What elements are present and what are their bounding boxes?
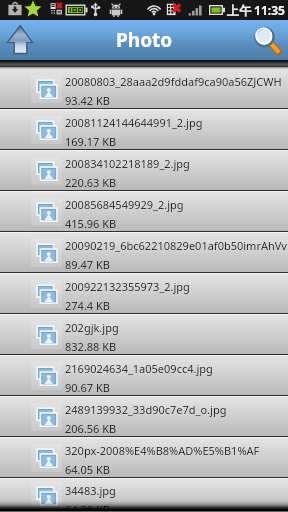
staticText: 20081124144644991_2.jpg <box>65 115 203 130</box>
button[interactable]: 20080803_28aaa2d9fddaf9ca90a56ZJCWH <box>0 69 288 108</box>
button[interactable]: 200922132355973_2.jpg <box>0 274 288 313</box>
staticText: 20080803_28aaa2d9fddaf9ca90a56ZJCWH <box>65 74 282 89</box>
staticText: 20090219_6bc62210829e01af0b50imrAhVv <box>65 238 287 253</box>
staticText: 206.56 KB <box>65 421 117 436</box>
staticText: 89.47 KB <box>65 257 110 272</box>
button[interactable]: 320px-2008%E4%B8%AD%E5%B1%AF <box>0 438 288 477</box>
staticText: Photo <box>116 27 173 53</box>
staticText: 274.4 KB <box>65 298 110 313</box>
staticText: 2169024634_1a05e09cc4.jpg <box>65 361 213 376</box>
button[interactable]: 20090219_6bc62210829e01af0b50imrAhVv <box>0 233 288 272</box>
button[interactable]: 20081124144644991_2.jpg <box>0 110 288 149</box>
staticText: 90.67 KB <box>65 380 110 395</box>
staticText: 202gjk.jpg <box>65 320 119 335</box>
staticText: 2489139932_33d90c7e7d_o.jpg <box>65 402 227 417</box>
button[interactable]: 34483.jpg <box>0 479 288 512</box>
staticText: 220.63 KB <box>65 175 117 190</box>
staticText: 34483.jpg <box>65 483 116 498</box>
button[interactable]: 20085684549929_2.jpg <box>0 192 288 231</box>
staticText: 320px-2008%E4%B8%AD%E5%B1%AF <box>65 443 260 458</box>
button[interactable]: Up one level <box>0 20 44 60</box>
staticText: 832.88 KB <box>65 339 117 354</box>
staticText: 200922132355973_2.jpg <box>65 279 190 294</box>
staticText: 93.42 KB <box>65 93 110 108</box>
button[interactable]: 202gjk.jpg <box>0 315 288 354</box>
button[interactable]: 2489139932_33d90c7e7d_o.jpg <box>0 397 288 436</box>
staticText: 20085684549929_2.jpg <box>65 197 184 212</box>
button[interactable]: 200834102218189_2.jpg <box>0 151 288 190</box>
staticText: 64.28 KB <box>65 502 110 512</box>
staticText: 169.17 KB <box>65 134 117 149</box>
staticText: 64.05 KB <box>65 462 110 477</box>
staticText: 415.96 KB <box>65 216 117 231</box>
button[interactable]: 2169024634_1a05e09cc4.jpg <box>0 356 288 395</box>
button[interactable]: Search <box>244 20 288 60</box>
staticText: 200834102218189_2.jpg <box>65 156 190 171</box>
staticText: 上午 11:35 <box>227 2 285 18</box>
